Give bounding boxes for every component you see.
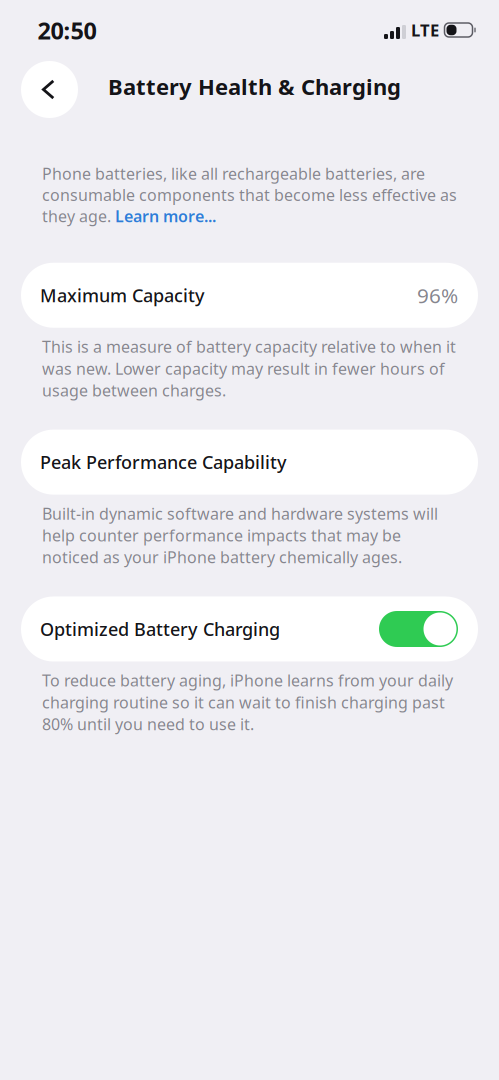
staticText: Maximum Capacity bbox=[40, 283, 205, 307]
staticText: This is a measure of battery capacity re… bbox=[42, 336, 456, 401]
staticText: To reduce battery aging, iPhone learns f… bbox=[42, 669, 453, 735]
button[interactable]: Peak Performance Capability bbox=[21, 430, 478, 495]
staticText: 96% bbox=[417, 281, 458, 309]
staticText: Built-in dynamic software and hardware s… bbox=[42, 503, 438, 568]
staticText: Battery Health & Charging bbox=[108, 71, 401, 101]
button[interactable]: Optimized Battery Charging bbox=[379, 611, 458, 647]
button[interactable]: Maximum Capacity bbox=[21, 263, 478, 328]
staticText: Phone batteries, like all rechargeable b… bbox=[42, 163, 457, 227]
button[interactable]: Back bbox=[21, 61, 78, 118]
staticText: Optimized Battery Charging bbox=[40, 617, 280, 641]
staticText: Peak Performance Capability bbox=[40, 450, 287, 474]
staticText: LTE bbox=[411, 19, 439, 41]
staticText: 20:50 bbox=[37, 14, 96, 46]
